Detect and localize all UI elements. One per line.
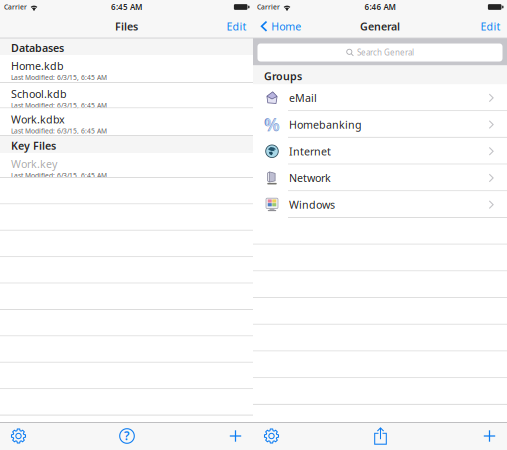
staticText: Carrier	[4, 3, 27, 11]
button[interactable]: Add	[223, 422, 247, 450]
staticText: Carrier	[257, 3, 280, 11]
staticText: General	[360, 19, 400, 33]
staticText: Files	[115, 19, 138, 33]
staticText: %	[265, 114, 279, 135]
button[interactable]: %	[253, 111, 507, 138]
button[interactable]: Internet	[253, 138, 507, 165]
staticText: Windows	[289, 198, 335, 212]
button[interactable]: Help	[115, 422, 139, 450]
staticText: Databases	[11, 41, 64, 55]
staticText: Work.key	[11, 157, 57, 171]
staticText: Search General	[357, 47, 414, 58]
button[interactable]: Settings	[259, 422, 283, 450]
staticText: School.kdb	[11, 87, 67, 101]
staticText: Last Modified: 6/3/15, 6:45 AM	[11, 101, 107, 110]
button[interactable]: Edit	[477, 14, 505, 38]
staticText: Last Modified: 6/3/15, 6:45 AM	[11, 126, 107, 135]
button[interactable]: eMail	[253, 84, 507, 111]
staticText: Last Modified: 6/3/15, 6:45 AM	[11, 171, 107, 180]
button[interactable]: Share	[368, 422, 392, 450]
staticText: Groups	[264, 69, 302, 83]
button[interactable]: Settings	[6, 422, 30, 450]
staticText: eMail	[289, 91, 317, 105]
staticText: 6:46 AM	[364, 2, 395, 12]
staticText: %	[264, 113, 280, 136]
button[interactable]: Windows	[253, 191, 507, 218]
button[interactable]: Add	[477, 422, 501, 450]
staticText: Homebanking	[289, 117, 362, 132]
staticText: Edit	[227, 19, 247, 33]
button[interactable]: Home	[258, 14, 303, 38]
button[interactable]: Network	[253, 165, 507, 191]
button[interactable]: Edit	[223, 14, 251, 38]
staticText: 6:45 AM	[111, 2, 142, 12]
staticText: Home	[271, 19, 301, 33]
button[interactable]: School.kdb	[0, 83, 253, 108]
staticText: Key Files	[11, 138, 56, 153]
staticText: Home.kdb	[11, 59, 64, 73]
button[interactable]: Home.kdb	[0, 55, 253, 83]
staticText: Network	[289, 171, 331, 185]
staticText: Edit	[481, 19, 501, 33]
staticText: ?	[124, 428, 130, 444]
staticText: Internet	[289, 144, 331, 158]
staticText: Work.kdbx	[11, 112, 65, 126]
button[interactable]: Work.key	[0, 153, 253, 178]
button[interactable]: Work.kdbx	[0, 108, 253, 136]
staticText: Last Modified: 6/3/15, 6:45 AM	[11, 73, 107, 82]
